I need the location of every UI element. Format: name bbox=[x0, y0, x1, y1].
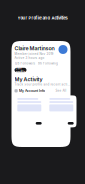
staticText: See All bbox=[55, 89, 66, 92]
staticText: My Account Info bbox=[19, 89, 45, 93]
staticText: Edit profile bbox=[15, 66, 25, 74]
staticText: 86 Following bbox=[38, 62, 58, 65]
button[interactable]: Edit profile bbox=[14, 68, 26, 72]
staticText: My Activity bbox=[14, 76, 42, 83]
staticText: 128 Followers bbox=[14, 62, 35, 65]
staticText: Claire Martinson bbox=[14, 45, 54, 51]
staticText: Your Profile and Activities bbox=[17, 15, 67, 20]
staticText: Track your profile and recent activity bbox=[14, 83, 70, 86]
staticText: Active 3 hours ago bbox=[14, 56, 44, 60]
button[interactable]: My Account Info bbox=[14, 89, 70, 93]
staticText: Member joined Nov 2019 bbox=[14, 52, 53, 56]
